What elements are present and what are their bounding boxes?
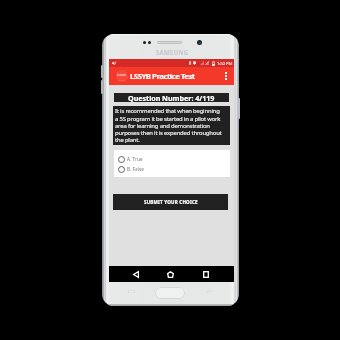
button[interactable]: A. True	[114, 155, 230, 163]
button[interactable]: Back	[124, 266, 147, 282]
button[interactable]: Home	[159, 266, 182, 282]
staticText: SIGMA	[118, 78, 126, 81]
staticText: A. True	[127, 156, 143, 162]
staticText: B. False	[127, 166, 145, 172]
staticText: SAMSUNG	[156, 48, 189, 56]
staticText: LSSYB Practice Test	[130, 71, 195, 82]
staticText: It is recommended that when beginning a …	[115, 107, 228, 143]
staticText: Lean	[117, 72, 127, 77]
button[interactable]: B. False	[114, 165, 230, 173]
button[interactable]: Recents	[194, 266, 217, 282]
button[interactable]: SUBMIT YOUR CHOICE	[113, 194, 228, 210]
staticText: SUBMIT YOUR CHOICE	[144, 199, 198, 205]
staticText: 1:32 PM	[217, 60, 233, 66]
staticText: Question Number: 4/119	[128, 93, 215, 102]
button[interactable]: More options	[220, 67, 231, 85]
